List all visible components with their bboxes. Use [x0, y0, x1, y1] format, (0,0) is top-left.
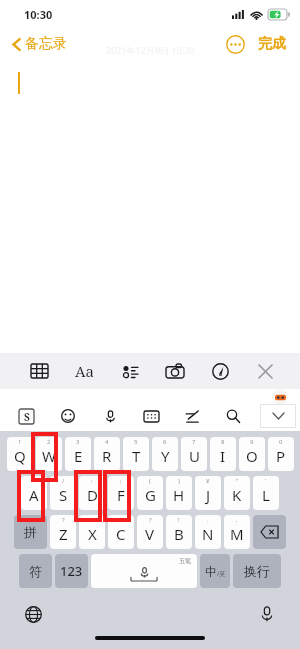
button[interactable]: Checklist: [115, 354, 145, 388]
staticText: /英: [217, 570, 226, 578]
button[interactable]: 6: [152, 437, 178, 471]
staticText: A: [29, 485, 39, 505]
button[interactable]: [0, 60, 300, 353]
staticText: R: [102, 446, 112, 466]
button[interactable]: 5: [123, 437, 149, 471]
staticText: S: [59, 485, 68, 505]
staticText: T: [132, 446, 141, 466]
staticText: I: [220, 446, 226, 466]
staticText: M: [230, 524, 244, 544]
staticText: ?: [149, 516, 152, 524]
staticText: Y: [161, 446, 170, 466]
staticText: 0: [279, 438, 283, 446]
button[interactable]: Collapse toolbar: [260, 404, 296, 428]
button[interactable]: Text format: [70, 354, 100, 388]
button[interactable]: ,: [224, 515, 250, 549]
button[interactable]: Voice input: [96, 402, 124, 430]
button[interactable]: ": [224, 476, 250, 510]
button[interactable]: 备忘录: [8, 32, 71, 56]
staticText: 拼: [24, 524, 37, 540]
button[interactable]: #: [108, 515, 134, 549]
staticText: ¥: [206, 477, 210, 485]
staticText: ": [236, 477, 239, 485]
staticText: 4: [105, 438, 109, 446]
button[interactable]: 中: [200, 554, 230, 588]
staticText: X: [88, 524, 97, 544]
button[interactable]: 8: [210, 437, 236, 471]
staticText: E: [74, 446, 83, 466]
staticText: 123: [60, 562, 83, 580]
staticText: F: [117, 485, 125, 505]
staticText: B: [174, 524, 184, 544]
button[interactable]: Search: [219, 402, 247, 430]
button[interactable]: Switch language: [20, 601, 46, 627]
staticText: ~: [32, 477, 36, 485]
staticText: N: [202, 524, 214, 544]
button[interactable]: Backspace: [253, 515, 286, 549]
staticText: G: [145, 485, 156, 505]
staticText: 5: [134, 438, 138, 446]
button[interactable]: 2: [36, 437, 62, 471]
button[interactable]: Space: [91, 554, 197, 588]
staticText: W: [42, 446, 56, 466]
staticText: Aa: [75, 361, 95, 381]
button[interactable]: Keyboard layout: [137, 402, 165, 430]
button[interactable]: Close keyboard: [250, 354, 280, 388]
button[interactable]: 完成: [256, 32, 288, 56]
button[interactable]: 9: [239, 437, 265, 471]
staticText: ?: [62, 516, 65, 524]
button[interactable]: .: [195, 515, 221, 549]
button[interactable]: 换行: [233, 554, 281, 588]
button[interactable]: :: [79, 476, 105, 510]
staticText: S: [24, 410, 30, 424]
staticText: #: [119, 516, 123, 524]
staticText: 符: [29, 563, 42, 579]
button[interactable]: 3: [65, 437, 91, 471]
button[interactable]: Voice input: [254, 601, 280, 627]
staticText: 五笔: [179, 557, 191, 565]
button[interactable]: ;: [108, 476, 134, 510]
button[interactable]: 1: [7, 437, 33, 471]
button[interactable]: ¥: [195, 476, 221, 510]
staticText: (: [149, 477, 151, 485]
button[interactable]: !: [166, 515, 192, 549]
button[interactable]: ): [166, 476, 192, 510]
staticText: 备忘录: [25, 35, 67, 53]
button[interactable]: Emoji: [54, 402, 82, 430]
button[interactable]: Sogou assistant: [272, 389, 288, 405]
button[interactable]: (: [137, 476, 163, 510]
button[interactable]: ~: [21, 476, 47, 510]
button[interactable]: Sogou input: [12, 402, 40, 430]
button[interactable]: ?: [137, 515, 163, 549]
button[interactable]: Table: [24, 354, 54, 388]
button[interactable]: 7: [181, 437, 207, 471]
staticText: 1: [18, 438, 22, 446]
staticText: C: [116, 524, 126, 544]
button[interactable]: 123: [55, 554, 88, 588]
button[interactable]: 符: [19, 554, 52, 588]
staticText: K: [232, 485, 242, 505]
staticText: 2021年12月9日 10:30: [106, 44, 195, 56]
staticText: 8: [221, 438, 225, 446]
staticText: 完成: [258, 35, 286, 53]
button[interactable]: More options: [224, 33, 246, 55]
button[interactable]: ': [253, 476, 279, 510]
staticText: /: [62, 477, 65, 485]
button[interactable]: Markup: [205, 354, 235, 388]
button[interactable]: 拼: [14, 515, 47, 549]
button[interactable]: ?: [50, 515, 76, 549]
staticText: ;: [120, 477, 122, 485]
staticText: 3: [76, 438, 80, 446]
button[interactable]: !: [79, 515, 105, 549]
staticText: ): [178, 477, 180, 485]
staticText: 9: [250, 438, 254, 446]
button[interactable]: 4: [94, 437, 120, 471]
button[interactable]: Handwriting: [178, 402, 206, 430]
button[interactable]: /: [50, 476, 76, 510]
staticText: ,: [236, 516, 238, 524]
staticText: H: [173, 485, 185, 505]
staticText: 2: [47, 438, 51, 446]
staticText: Q: [14, 446, 26, 466]
button[interactable]: Camera: [160, 354, 190, 388]
button[interactable]: 0: [268, 437, 294, 471]
